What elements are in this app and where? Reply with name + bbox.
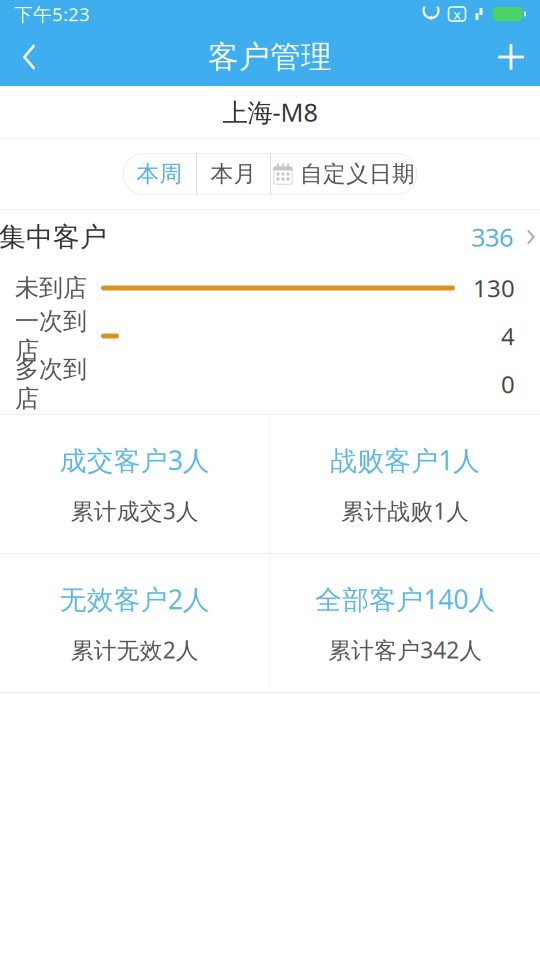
staticText: 累计成交3人 [71, 496, 199, 526]
staticText: 4 [501, 320, 515, 352]
staticText: 累计无效2人 [71, 635, 199, 665]
staticText: 无效客户2人 [60, 581, 210, 617]
staticText: 0 [501, 368, 515, 400]
staticText: 上海-M8 [222, 95, 317, 129]
staticText: 336 [471, 220, 513, 254]
button[interactable]: 成交客户3人 [0, 415, 269, 553]
button[interactable]: 无效客户2人 [0, 554, 269, 692]
staticText: 本周 [136, 160, 182, 188]
button[interactable]: 集中客户 [0, 210, 540, 264]
staticText: 130 [473, 272, 515, 304]
button[interactable]: 全部客户140人 [270, 554, 540, 692]
button[interactable]: 自定义日期 [271, 153, 417, 195]
staticText: 战败客户1人 [330, 442, 480, 478]
button[interactable]: 返回 [0, 28, 58, 86]
staticText: 下午5:23 [14, 2, 90, 26]
staticText: 全部客户140人 [315, 581, 495, 617]
staticText: 未到店 [15, 273, 87, 303]
button[interactable]: 本周 [123, 153, 196, 195]
button[interactable]: 本月 [197, 153, 270, 195]
staticText: 自定义日期 [300, 160, 415, 188]
staticText: x [453, 5, 460, 23]
staticText: 本月 [210, 160, 256, 188]
staticText: 成交客户3人 [60, 442, 210, 478]
staticText: 多次到店 [15, 354, 87, 413]
staticText: 集中客户 [0, 221, 107, 253]
button[interactable]: 战败客户1人 [270, 415, 540, 553]
staticText: 客户管理 [208, 38, 332, 76]
button[interactable]: 添加客户 [482, 28, 540, 86]
staticText: 累计战败1人 [341, 496, 469, 526]
staticText: 一次到店 [15, 306, 87, 365]
staticText: 累计客户342人 [328, 635, 482, 665]
